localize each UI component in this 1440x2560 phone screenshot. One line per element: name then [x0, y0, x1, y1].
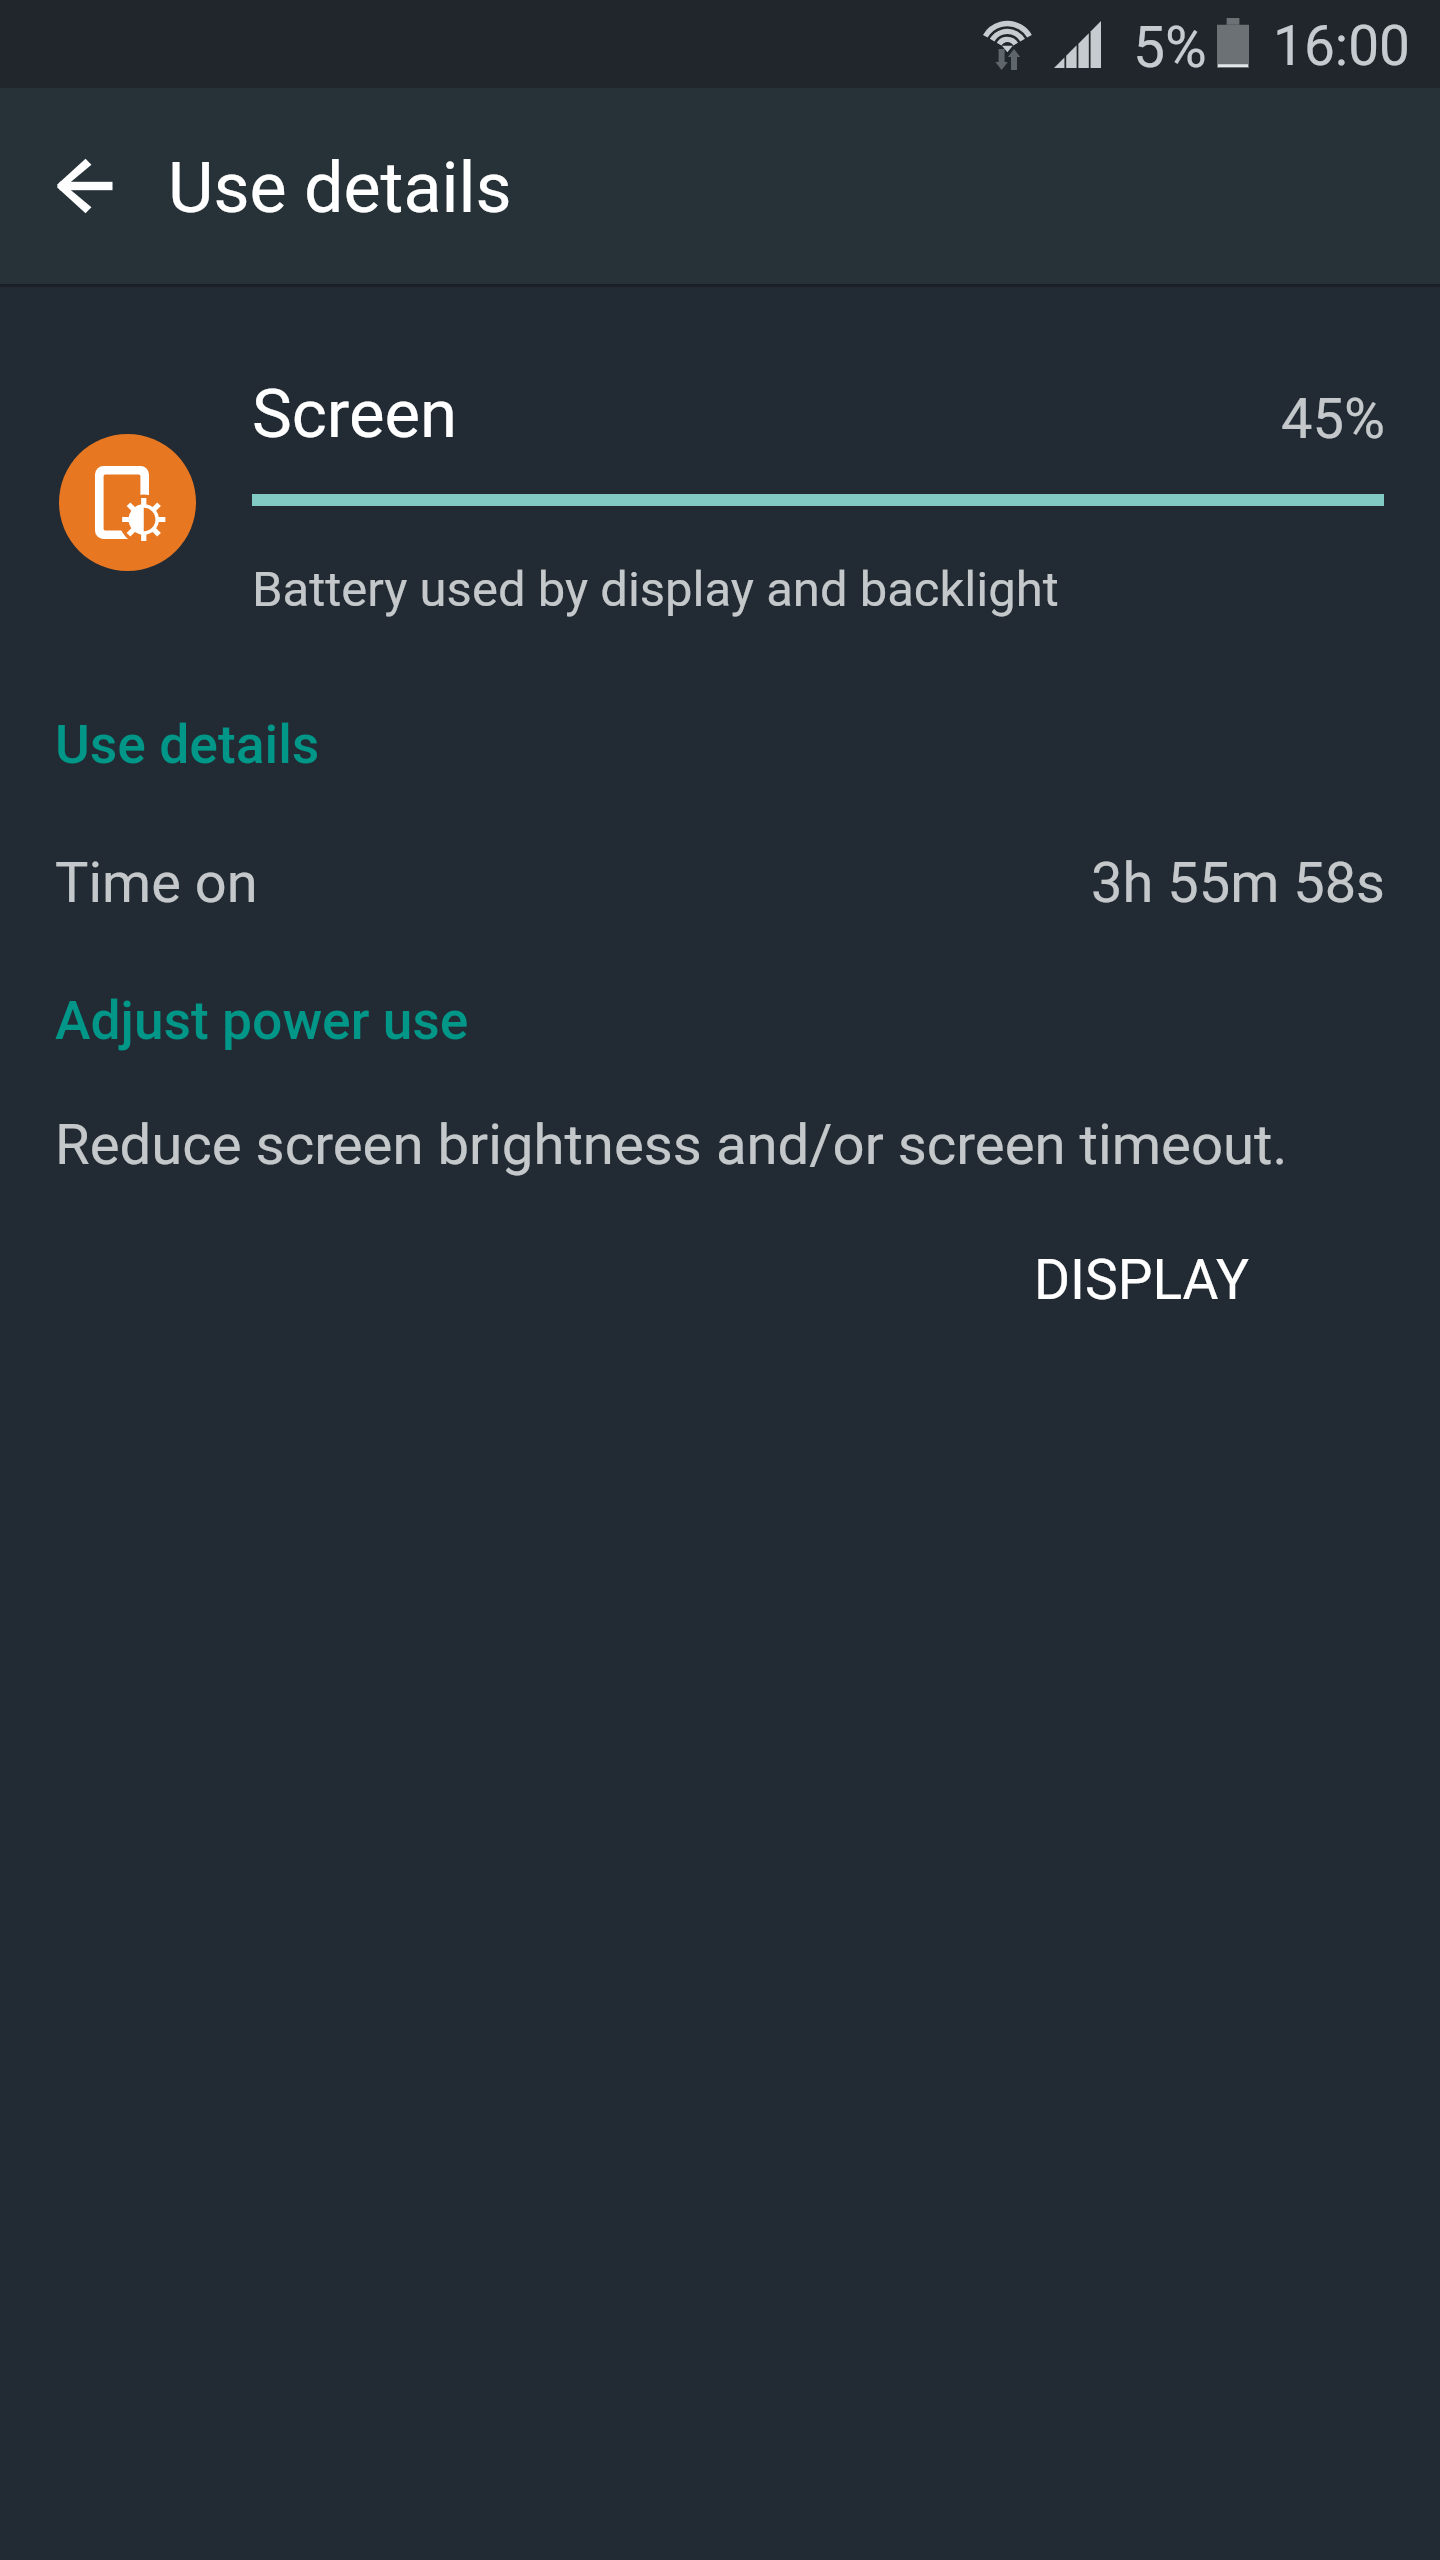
staticText: Use details: [168, 147, 512, 229]
staticText: Battery used by display and backlight: [252, 561, 1059, 618]
staticText: Reduce screen brightness and/or screen t…: [55, 1112, 1288, 1178]
staticText: DISPLAY: [1034, 1248, 1249, 1312]
staticText: Screen: [252, 375, 457, 454]
staticText: 5%: [1133, 14, 1207, 81]
staticText: Time on: [55, 850, 258, 916]
staticText: 3h 55m 58s: [1091, 850, 1385, 916]
staticText: Use details: [55, 714, 320, 776]
button[interactable]: Time on: [0, 800, 1440, 932]
staticText: Adjust power use: [55, 990, 469, 1052]
staticText: 45%: [1281, 386, 1385, 452]
button[interactable]: DISPLAY: [998, 1228, 1288, 1332]
staticText: 16:00: [1273, 14, 1410, 78]
button[interactable]: Screen: [0, 332, 1440, 652]
button[interactable]: Navigate up: [28, 129, 142, 243]
